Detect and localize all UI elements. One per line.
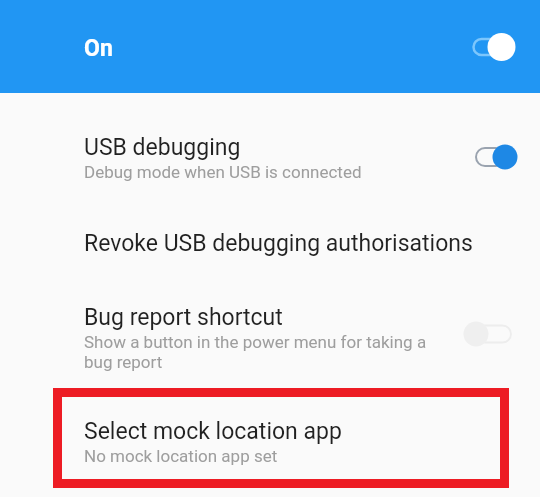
staticText: Select mock location app <box>84 418 342 445</box>
staticText: Revoke USB debugging authorisations <box>84 230 473 257</box>
staticText: On <box>84 35 113 62</box>
staticText: USB debugging <box>84 134 241 161</box>
button[interactable]: Select mock location app <box>0 396 540 478</box>
button[interactable]: USB debugging on <box>468 126 530 188</box>
staticText: No mock location app set <box>84 446 278 466</box>
button[interactable]: Developer options enabled <box>464 14 530 80</box>
button[interactable]: Bug report shortcut <box>0 282 540 385</box>
staticText: Debug mode when USB is connected <box>84 162 362 182</box>
button[interactable]: Bug report shortcut off <box>450 304 522 366</box>
button[interactable]: Revoke USB debugging authorisations <box>0 205 540 277</box>
button[interactable]: USB debugging <box>0 112 540 194</box>
staticText: Bug report shortcut <box>84 304 283 331</box>
staticText: Show a button in the power menu for taki… <box>84 332 440 372</box>
